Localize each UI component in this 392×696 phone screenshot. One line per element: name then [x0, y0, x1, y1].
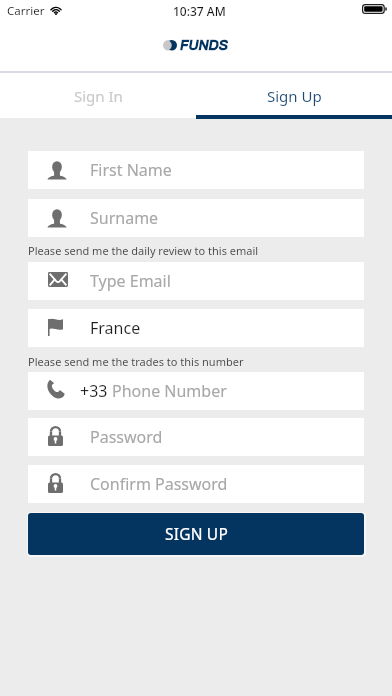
staticText: France: [90, 317, 141, 339]
button[interactable]: Confirm Password: [28, 465, 364, 503]
staticText: SIGN UP: [165, 523, 228, 544]
staticText: Password: [90, 426, 163, 448]
button[interactable]: Sign In: [0, 73, 196, 119]
button[interactable]: SIGN UP: [28, 513, 364, 555]
button[interactable]: Type Email: [28, 262, 364, 300]
button[interactable]: Surname: [28, 199, 364, 237]
button[interactable]: Password: [28, 418, 364, 456]
staticText: Sign Up: [267, 86, 322, 106]
staticText: 10:37 AM: [173, 3, 226, 19]
staticText: Sign In: [74, 86, 123, 106]
staticText: Type Email: [90, 270, 171, 292]
staticText: Confirm Password: [90, 473, 228, 495]
staticText: Carrier: [7, 3, 45, 19]
staticText: Phone Number: [112, 380, 227, 402]
button[interactable]: Sign Up: [196, 73, 392, 119]
staticText: FUNDS: [180, 38, 228, 53]
staticText: First Name: [90, 159, 172, 181]
staticText: +33: [80, 380, 112, 402]
button[interactable]: First Name: [28, 151, 364, 189]
button[interactable]: +33: [28, 372, 364, 410]
staticText: Please send me the daily review to this …: [28, 243, 259, 258]
staticText: Please send me the trades to this number: [28, 354, 244, 369]
button[interactable]: France: [28, 309, 364, 347]
staticText: Surname: [90, 207, 159, 229]
